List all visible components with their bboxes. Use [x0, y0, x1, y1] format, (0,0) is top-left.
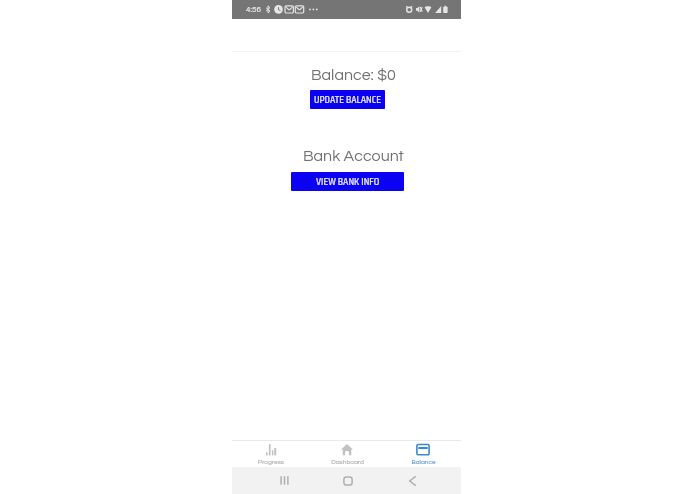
button[interactable]: Progress	[232, 441, 309, 466]
button[interactable]: Recent apps	[264, 467, 304, 494]
staticText: Progress	[258, 459, 284, 466]
staticText: Balance	[411, 459, 436, 466]
staticText: Balance: $0	[311, 67, 396, 83]
staticText: Bank Account	[303, 148, 404, 164]
button[interactable]: Balance	[385, 441, 461, 466]
staticText: 4:56	[246, 5, 261, 13]
button[interactable]: Home	[328, 467, 368, 494]
staticText: Dashboard	[331, 459, 364, 466]
button[interactable]: UPDATE BALANCE	[310, 90, 385, 109]
staticText: UPDATE BALANCE	[314, 93, 381, 107]
button[interactable]: VIEW BANK INFO	[291, 172, 404, 191]
button[interactable]: Back	[392, 467, 432, 494]
staticText: VIEW BANK INFO	[316, 175, 380, 189]
button[interactable]: Dashboard	[309, 441, 385, 466]
